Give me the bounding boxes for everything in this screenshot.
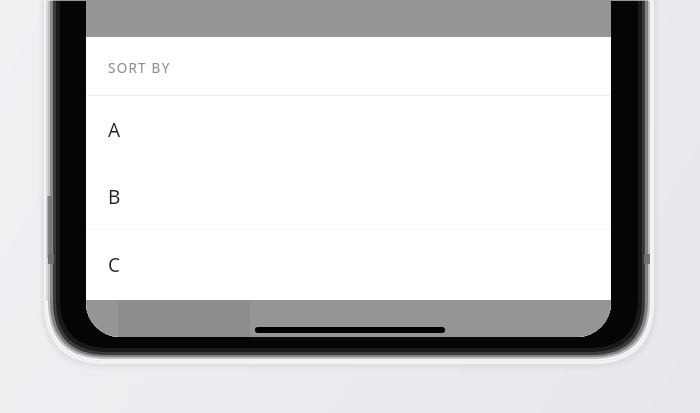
button[interactable]: A [86,96,611,163]
staticText: A [108,117,121,143]
other: Home [255,327,445,333]
staticText: C [108,252,121,278]
button[interactable]: C [86,230,611,300]
button[interactable]: B [86,163,611,230]
staticText: B [108,184,121,210]
staticText: SORT BY [108,59,171,77]
